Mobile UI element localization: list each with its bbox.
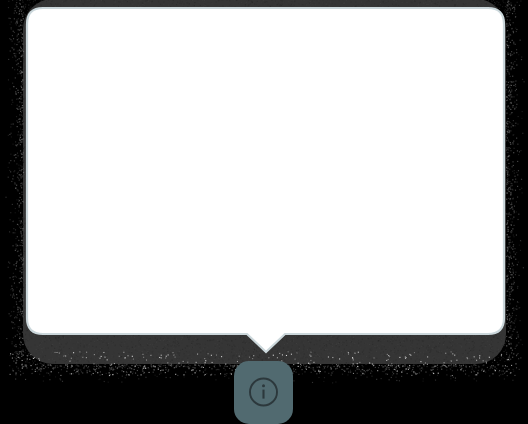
button[interactable]: Information bbox=[0, 0, 528, 424]
